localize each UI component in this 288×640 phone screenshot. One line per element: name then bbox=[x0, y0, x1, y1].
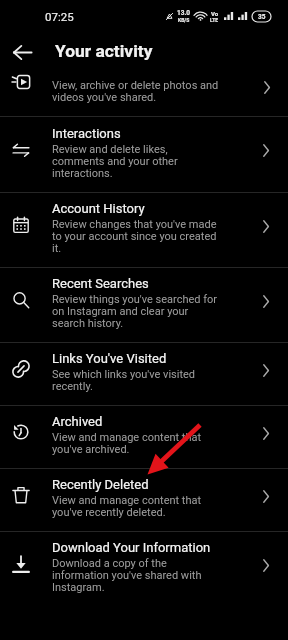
staticText: Recent Searches bbox=[52, 276, 149, 291]
button[interactable]: Interactions bbox=[0, 117, 288, 192]
staticText: Links You've Visited bbox=[52, 351, 167, 366]
staticText: Review changes that you've made to your … bbox=[52, 218, 220, 255]
staticText: KB/S bbox=[178, 17, 190, 23]
staticText: 35 bbox=[258, 13, 266, 21]
button[interactable]: Back bbox=[6, 36, 38, 68]
staticText: Review and delete likes, comments and yo… bbox=[52, 143, 220, 180]
staticText: Review things you've searched for on Ins… bbox=[52, 293, 220, 330]
staticText: Account History bbox=[52, 201, 145, 216]
button[interactable]: Photos and videos bbox=[0, 62, 288, 116]
button[interactable]: Links You've Visited bbox=[0, 343, 288, 405]
staticText: LTE bbox=[210, 17, 219, 23]
button[interactable]: Account History bbox=[0, 193, 288, 267]
staticText: See which links you've visited recently. bbox=[52, 368, 220, 393]
staticText: Download a copy of the information you'v… bbox=[52, 557, 220, 594]
staticText: Interactions bbox=[52, 126, 121, 141]
staticText: Download Your Information bbox=[52, 540, 211, 555]
button[interactable]: Archived bbox=[0, 406, 288, 468]
staticText: Archived bbox=[52, 414, 103, 429]
staticText: View and manage content that you've rece… bbox=[52, 494, 220, 519]
button[interactable]: Recently Deleted bbox=[0, 469, 288, 531]
staticText: View and manage content that you've arch… bbox=[52, 431, 220, 456]
button[interactable]: Download Your Information bbox=[0, 532, 288, 606]
staticText: Your activity bbox=[55, 41, 153, 61]
staticText: Recently Deleted bbox=[52, 477, 149, 492]
staticText: Vo bbox=[211, 10, 219, 17]
button[interactable]: Recent Searches bbox=[0, 268, 288, 342]
staticText: 13.0 bbox=[177, 9, 191, 17]
staticText: 07:25 bbox=[45, 10, 74, 23]
staticText: View, archive or delete photos and video… bbox=[52, 79, 220, 104]
